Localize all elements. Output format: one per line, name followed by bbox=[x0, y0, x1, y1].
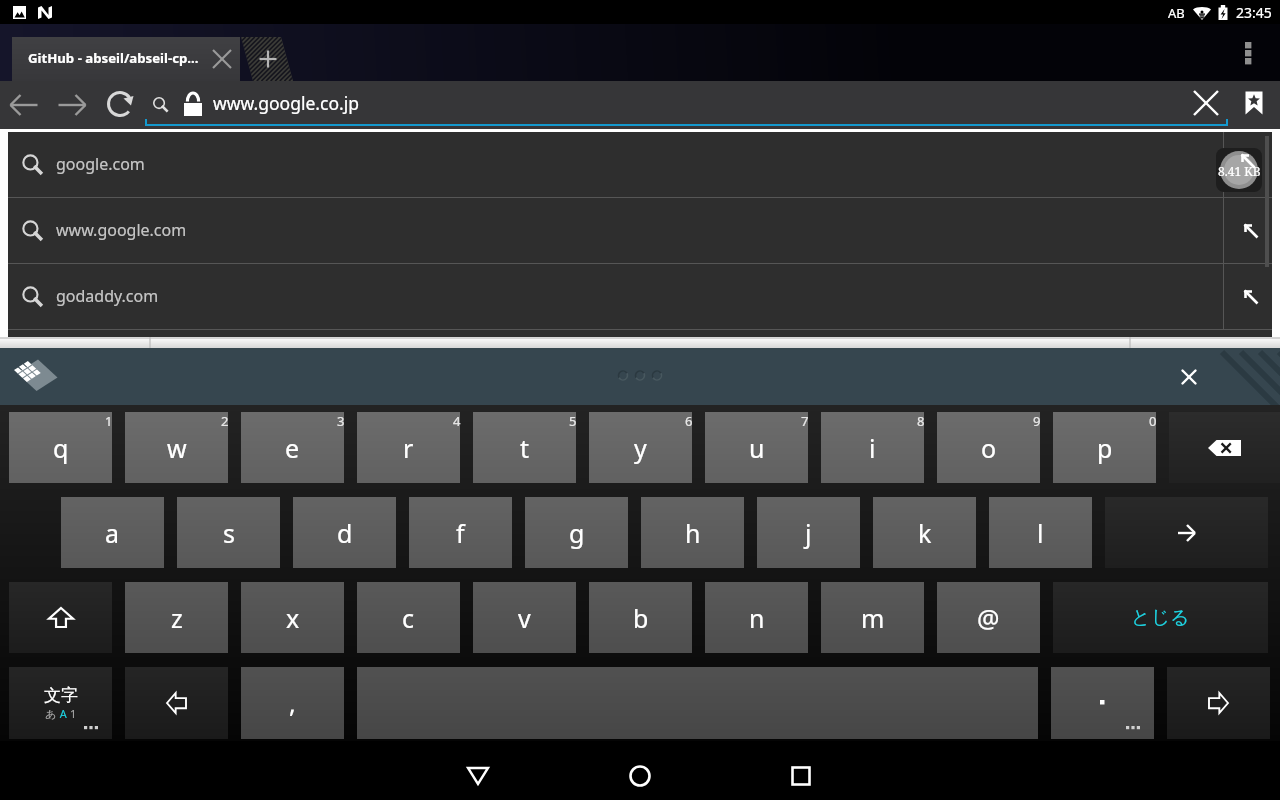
button[interactable]: Back bbox=[0, 81, 48, 129]
staticText: u bbox=[749, 431, 765, 465]
staticText: z bbox=[171, 601, 183, 635]
staticText: f bbox=[456, 516, 465, 550]
button[interactable]: GitHub - abseil/abseil-cp... bbox=[12, 37, 240, 81]
button[interactable]: v bbox=[473, 582, 576, 653]
staticText: x bbox=[286, 601, 300, 635]
button[interactable]: z bbox=[125, 582, 228, 653]
button[interactable]: p bbox=[1053, 412, 1156, 483]
button[interactable]: Close keyboard bbox=[1168, 356, 1210, 398]
staticText: h bbox=[685, 516, 701, 550]
button[interactable]: f bbox=[409, 497, 512, 568]
button[interactable]: enter bbox=[1105, 497, 1268, 568]
button[interactable]: , bbox=[241, 667, 344, 739]
staticText: g bbox=[569, 516, 585, 550]
staticText: A bbox=[57, 706, 70, 721]
button[interactable]: g bbox=[525, 497, 628, 568]
button[interactable]: rightarr bbox=[1167, 667, 1270, 739]
staticText: 6 bbox=[685, 412, 693, 430]
staticText: www.google.com bbox=[56, 219, 187, 241]
staticText: j bbox=[805, 516, 812, 550]
button[interactable]: New tab bbox=[241, 37, 293, 81]
staticText: 文字 bbox=[44, 685, 78, 706]
button[interactable]: s bbox=[177, 497, 280, 568]
button[interactable]: www.google.com bbox=[8, 198, 1272, 263]
staticText: 1 bbox=[105, 412, 113, 430]
button[interactable]: Back bbox=[418, 741, 538, 800]
button[interactable]: u bbox=[705, 412, 808, 483]
button[interactable]: m bbox=[821, 582, 924, 653]
staticText: 8.41 KB bbox=[1218, 163, 1261, 179]
button[interactable]: o bbox=[937, 412, 1040, 483]
button[interactable]: c bbox=[357, 582, 460, 653]
staticText: , bbox=[289, 686, 296, 720]
button[interactable]: l bbox=[989, 497, 1092, 568]
button[interactable]: moji bbox=[9, 667, 112, 739]
staticText: o bbox=[981, 431, 997, 465]
staticText: 4 bbox=[453, 412, 461, 430]
button[interactable]: e bbox=[241, 412, 344, 483]
staticText: l bbox=[1037, 516, 1044, 550]
button[interactable]: @ bbox=[937, 582, 1040, 653]
staticText: GitHub - abseil/abseil-cp... bbox=[28, 49, 199, 67]
staticText: t bbox=[520, 431, 530, 465]
button[interactable]: Recent apps bbox=[741, 741, 861, 800]
staticText: 0 bbox=[1149, 412, 1157, 430]
button[interactable]: d bbox=[293, 497, 396, 568]
button[interactable]: とじる bbox=[1053, 582, 1268, 653]
button[interactable]: More options bbox=[1226, 31, 1270, 75]
staticText: c bbox=[402, 601, 415, 635]
button[interactable]: shift bbox=[9, 582, 112, 653]
button[interactable]: q bbox=[9, 412, 112, 483]
button[interactable]: a bbox=[61, 497, 164, 568]
button[interactable]: n bbox=[705, 582, 808, 653]
staticText: y bbox=[634, 431, 647, 465]
button[interactable]: Forward bbox=[48, 81, 96, 129]
staticText: AB bbox=[1168, 4, 1185, 22]
staticText: 8 bbox=[917, 412, 925, 430]
button[interactable]: y bbox=[589, 412, 692, 483]
staticText: r bbox=[403, 431, 414, 465]
button[interactable]: Use suggestion bbox=[1227, 273, 1275, 321]
button[interactable]: backspace bbox=[1169, 412, 1280, 483]
button[interactable]: j bbox=[757, 497, 860, 568]
staticText: godaddy.com bbox=[56, 285, 159, 307]
staticText: 2 bbox=[221, 412, 229, 430]
staticText: b bbox=[633, 601, 649, 635]
staticText: i bbox=[869, 431, 876, 465]
button[interactable]: Clear bbox=[1182, 79, 1230, 127]
button[interactable]: Bookmark bbox=[1234, 83, 1274, 123]
button[interactable]: Use suggestion bbox=[1227, 141, 1275, 189]
button[interactable]: google.com bbox=[8, 132, 1272, 197]
button[interactable]: k bbox=[873, 497, 976, 568]
button[interactable]: Home bbox=[580, 741, 700, 800]
staticText: 1 bbox=[70, 706, 77, 721]
button[interactable]: Close tab bbox=[200, 37, 244, 81]
button[interactable]: dot bbox=[1051, 667, 1154, 739]
staticText: 5 bbox=[569, 412, 577, 430]
button[interactable]: Reload bbox=[96, 81, 144, 129]
button[interactable]: Use suggestion bbox=[1227, 207, 1275, 255]
button[interactable]: space bbox=[357, 667, 1038, 739]
button[interactable]: b bbox=[589, 582, 692, 653]
staticText: p bbox=[1097, 431, 1113, 465]
button[interactable]: r bbox=[357, 412, 460, 483]
staticText: あ bbox=[45, 707, 57, 721]
button[interactable]: h bbox=[641, 497, 744, 568]
staticText: www.google.co.jp bbox=[213, 91, 359, 115]
staticText: google.com bbox=[56, 153, 145, 175]
button[interactable]: i bbox=[821, 412, 924, 483]
staticText: e bbox=[285, 431, 300, 465]
staticText: とじる bbox=[1131, 606, 1190, 630]
button[interactable]: w bbox=[125, 412, 228, 483]
staticText: 7 bbox=[801, 412, 809, 430]
button[interactable]: godaddy.com bbox=[8, 264, 1272, 329]
staticText: w bbox=[167, 431, 187, 465]
staticText: @ bbox=[977, 601, 1000, 635]
staticText: 23:45 bbox=[1236, 3, 1272, 22]
staticText: 9 bbox=[1033, 412, 1041, 430]
button[interactable]: leftarr bbox=[125, 667, 228, 739]
button[interactable]: x bbox=[241, 582, 344, 653]
staticText: q bbox=[53, 431, 69, 465]
staticText: k bbox=[918, 516, 932, 550]
button[interactable]: t bbox=[473, 412, 576, 483]
